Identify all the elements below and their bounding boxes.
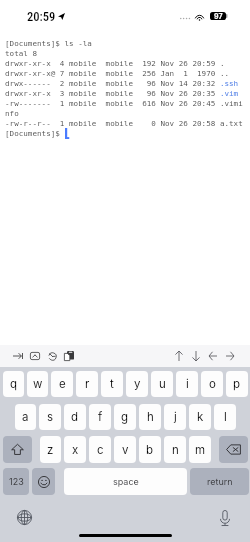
staticText: f [98,410,103,424]
staticText: z [47,443,54,457]
button[interactable]: Emoji [32,468,55,495]
staticText: drwxr-xr-x@ 7 mobile mobile 256 Jan 1 19… [5,69,230,78]
staticText: -rw-r--r-- 1 mobile mobile 0 Nov 26 20:5… [5,119,243,128]
staticText: s [47,410,54,424]
staticText: k [197,410,204,424]
button[interactable]: Arrow left [206,347,220,365]
button[interactable]: r [76,371,98,397]
button[interactable]: g [114,404,136,430]
button[interactable]: h [139,404,161,430]
button[interactable]: Arrow up [172,347,186,365]
staticText: a [22,410,29,424]
button[interactable]: e [51,371,73,397]
staticText: space [113,476,139,487]
button[interactable]: Escape [28,347,42,365]
button[interactable]: Change keyboard [17,510,32,525]
staticText: 20:59 [27,9,56,24]
button[interactable]: k [189,404,211,430]
button[interactable]: z [40,436,61,463]
staticText: t [110,377,114,391]
staticText: b [146,443,154,457]
staticText: return [207,476,233,487]
button[interactable]: Arrow right [223,347,237,365]
staticText: 123 [9,476,24,487]
button[interactable]: l [214,404,236,430]
staticText: u [159,377,166,391]
button[interactable]: c [89,436,111,463]
staticText: r [85,377,90,391]
staticText: drwxr-xr-x 3 mobile mobile 96 Nov 26 20:… [5,89,239,98]
staticText: q [10,377,18,391]
staticText: p [233,377,241,391]
staticText: total 8 [5,49,38,58]
button[interactable]: Paste [62,347,76,365]
staticText: c [97,443,104,457]
button[interactable]: q [3,371,24,397]
button[interactable]: o [201,371,223,397]
staticText: o [209,377,216,391]
button[interactable]: Arrow down [189,347,203,365]
staticText: i [186,377,189,391]
button[interactable]: d [64,404,86,430]
button[interactable]: Backspace [219,436,248,463]
button[interactable]: x [64,436,86,463]
button[interactable]: i [176,371,198,397]
button[interactable]: p [226,371,248,397]
button[interactable]: v [114,436,136,463]
staticText: w [33,377,43,391]
button[interactable]: Tab [11,347,25,365]
button[interactable]: 123 [3,468,29,495]
button[interactable]: b [139,436,161,463]
button[interactable]: n [164,436,186,463]
button[interactable]: m [189,436,211,463]
staticText: l [224,410,227,424]
button[interactable]: space [64,468,187,495]
button[interactable]: t [101,371,123,397]
staticText: -rw------- 1 mobile mobile 616 Nov 26 20… [5,99,243,108]
staticText: g [121,410,129,424]
staticText: e [59,377,66,391]
staticText: j [174,410,177,424]
staticText: v [122,443,129,457]
staticText: nfo [5,109,19,118]
staticText: x [72,443,79,457]
button[interactable]: w [27,371,48,397]
button[interactable]: u [151,371,173,397]
button[interactable]: s [39,404,61,430]
staticText: h [147,410,154,424]
button[interactable]: Dictation [219,510,231,526]
button[interactable]: a [15,404,36,430]
staticText: [Documents]$ [5,129,65,138]
staticText: d [71,410,79,424]
staticText: m [195,443,206,457]
staticText: 97 [214,12,223,20]
button[interactable]: y [126,371,148,397]
button[interactable]: return [190,468,249,495]
button[interactable]: Undo [45,347,59,365]
staticText: y [134,377,141,391]
staticText: drwxr-xr-x 4 mobile mobile 192 Nov 26 20… [5,59,225,68]
staticText: n [172,443,179,457]
button[interactable]: j [164,404,186,430]
button[interactable]: f [89,404,111,430]
staticText: [Documents]$ ls -la [5,39,92,48]
button[interactable]: Shift [3,436,32,463]
staticText: drwx------ 2 mobile mobile 96 Nov 14 20:… [5,79,239,88]
